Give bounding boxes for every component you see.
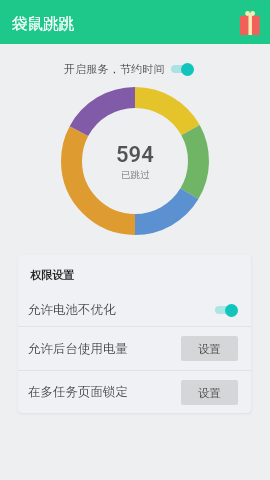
staticText: 594: [116, 142, 154, 168]
button[interactable]: Gift: [239, 11, 261, 35]
button[interactable]: 允许后台使用电量: [18, 327, 251, 370]
staticText: 开启服务，节约时间: [64, 62, 165, 76]
staticText: 允许电池不优化: [28, 302, 116, 318]
staticText: 在多任务页面锁定: [28, 384, 128, 400]
button[interactable]: 设置: [181, 336, 238, 361]
staticText: 袋鼠跳跳: [12, 14, 74, 34]
staticText: 设置: [198, 342, 221, 356]
staticText: 设置: [198, 386, 221, 400]
staticText: 已跳过: [121, 169, 150, 181]
staticText: 权限设置: [30, 268, 74, 282]
button[interactable]: 设置: [181, 380, 238, 405]
button[interactable]: 允许电池不优化: [18, 294, 251, 326]
staticText: 允许后台使用电量: [28, 341, 128, 357]
button[interactable]: 在多任务页面锁定: [18, 371, 251, 413]
button[interactable]: 开启服务，节约时间: [64, 62, 194, 76]
